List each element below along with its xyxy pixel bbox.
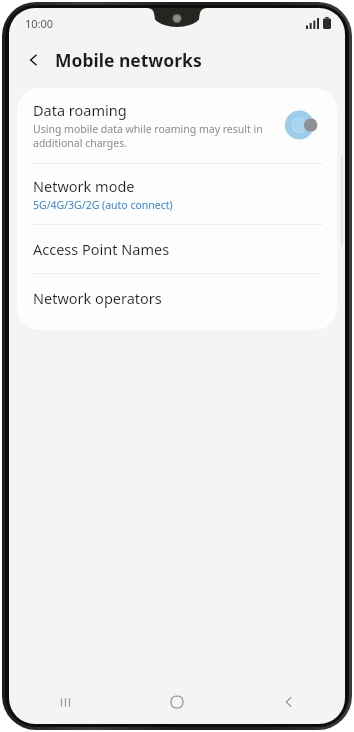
- button[interactable]: Back: [233, 680, 345, 724]
- button[interactable]: Data roaming: [17, 88, 337, 163]
- button[interactable]: Home: [121, 680, 233, 724]
- button[interactable]: Network mode: [17, 164, 337, 224]
- button[interactable]: Access Point Names: [17, 225, 337, 273]
- staticText: 5G/4G/3G/2G (auto connect): [33, 198, 173, 212]
- staticText: 10:00: [25, 16, 54, 31]
- button[interactable]: Recents: [9, 680, 121, 724]
- button[interactable]: Navigate up: [17, 43, 51, 77]
- staticText: Data roaming: [33, 100, 127, 120]
- staticText: Network mode: [33, 176, 135, 196]
- staticText: Using mobile data while roaming may resu…: [33, 122, 275, 150]
- staticText: Access Point Names: [33, 239, 170, 259]
- staticText: Network operators: [33, 288, 162, 308]
- button[interactable]: Data roaming toggle: [281, 107, 327, 143]
- button[interactable]: Network operators: [17, 274, 337, 322]
- staticText: Mobile networks: [55, 48, 202, 72]
